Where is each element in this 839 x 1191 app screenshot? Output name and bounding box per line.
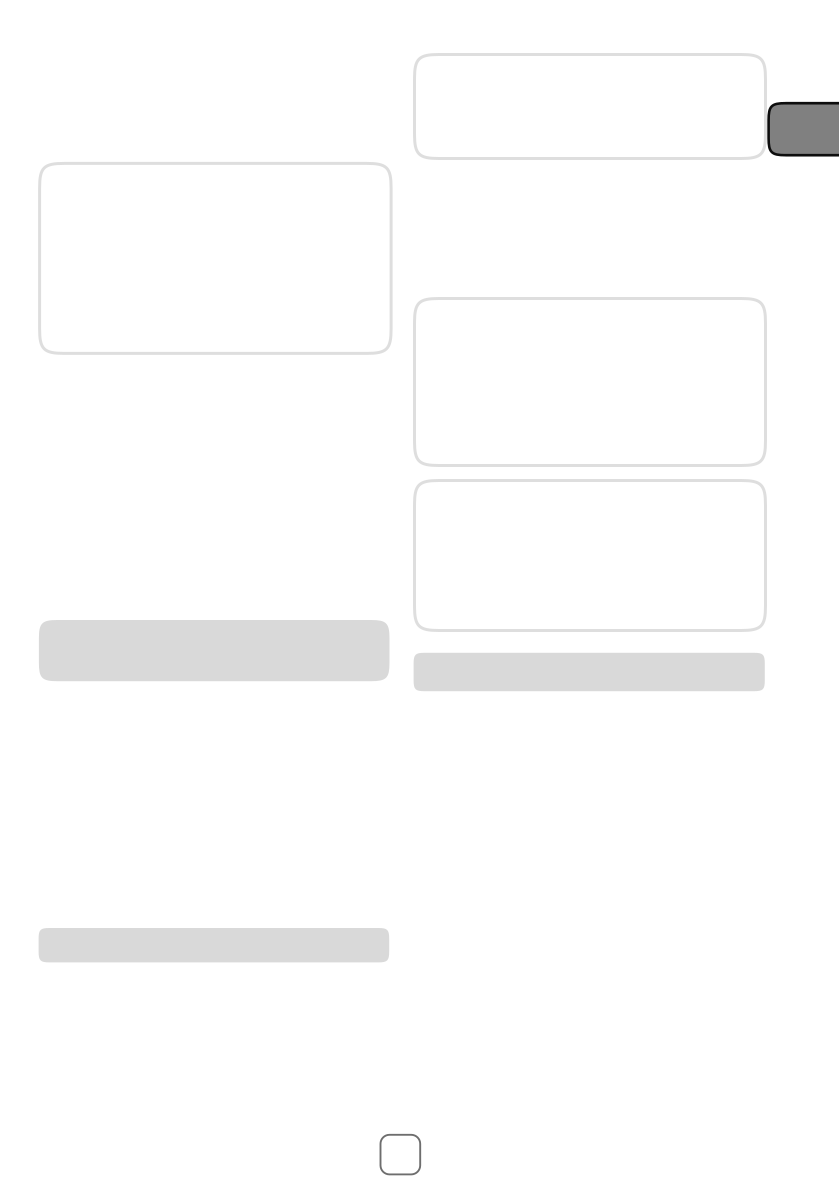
button[interactable]: Home — [380, 1135, 420, 1174]
button[interactable]: Selected tag — [769, 103, 839, 155]
button[interactable]: Card 1 — [414, 54, 765, 158]
button[interactable]: Card 2 — [40, 163, 391, 353]
button[interactable]: Card 3 — [414, 298, 765, 465]
button[interactable]: Card 4 — [414, 480, 765, 630]
